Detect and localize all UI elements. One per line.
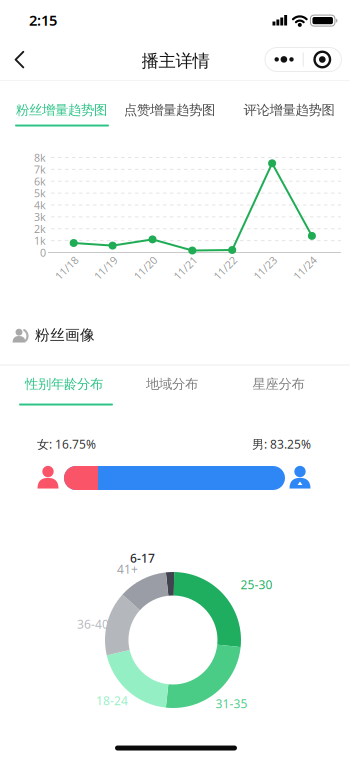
staticText: 11/22 [211, 261, 239, 275]
staticText: 5k [34, 186, 46, 200]
staticText: 18-24 [96, 692, 128, 708]
staticText: 8k [34, 150, 46, 165]
button[interactable]: Close [305, 42, 340, 77]
staticText: 36-40 [77, 616, 109, 632]
button[interactable]: 性别年龄分布 [25, 376, 103, 392]
staticText: 地域分布 [146, 376, 198, 392]
staticText: 11/21 [171, 261, 199, 275]
staticText: 31-35 [215, 695, 247, 711]
staticText: 11/19 [92, 261, 120, 275]
staticText: 性别年龄分布 [25, 376, 103, 392]
staticText: 男: 83.25% [252, 436, 311, 452]
staticText: 11/20 [131, 261, 159, 275]
staticText: 粉丝增量趋势图 [16, 102, 107, 118]
staticText: 评论增量趋势图 [243, 102, 334, 118]
staticText: 2k [34, 222, 46, 236]
staticText: 7k [34, 162, 46, 176]
staticText: 11/24 [291, 261, 319, 275]
button[interactable]: 评论增量趋势图 [243, 102, 334, 118]
button[interactable]: 星座分布 [252, 376, 304, 392]
staticText: 1k [34, 233, 46, 248]
staticText: 女: 16.75% [37, 436, 96, 452]
button[interactable]: Back [7, 44, 31, 74]
button[interactable]: 地域分布 [146, 376, 198, 392]
staticText: 25-30 [240, 576, 272, 592]
button[interactable]: 粉丝增量趋势图 [16, 102, 107, 118]
button[interactable]: 点赞增量趋势图 [124, 102, 215, 118]
staticText: 星座分布 [252, 376, 304, 392]
staticText: 4k [34, 198, 46, 212]
staticText: 2:15 [29, 10, 57, 30]
staticText: 6k [34, 174, 46, 188]
staticText: 6-17 [130, 550, 155, 566]
staticText: 3k [34, 210, 46, 224]
staticText: 粉丝画像 [35, 326, 95, 344]
staticText: 41+ [117, 561, 138, 577]
staticText: 11/23 [251, 261, 279, 275]
staticText: 11/18 [53, 261, 81, 275]
button[interactable]: More [267, 42, 302, 77]
staticText: 播主详情 [141, 50, 209, 72]
staticText: 0 [40, 245, 46, 260]
staticText: 点赞增量趋势图 [124, 102, 215, 118]
